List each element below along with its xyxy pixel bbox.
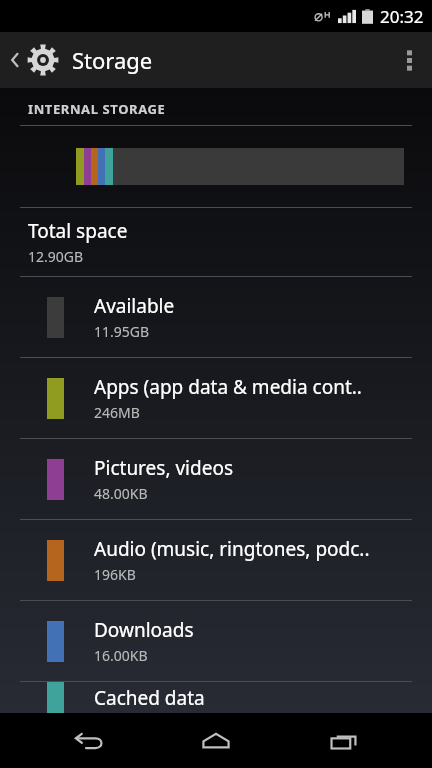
staticText: Downloads — [94, 617, 194, 643]
staticText: 11.95GB — [94, 322, 150, 341]
staticText: 48.00KB — [94, 484, 148, 503]
button[interactable]: Apps (app data & media cont.. — [0, 358, 432, 438]
staticText: 12.90GB — [28, 247, 84, 266]
staticText: Available — [94, 293, 175, 319]
button[interactable]: Pictures, videos — [0, 439, 432, 519]
button[interactable]: Recent apps — [305, 713, 383, 768]
button[interactable]: Total space — [0, 208, 432, 276]
staticText: 20:32 — [380, 5, 424, 28]
button[interactable]: Back — [50, 713, 128, 768]
staticText: Cached data — [94, 685, 205, 711]
staticText: Pictures, videos — [94, 455, 233, 481]
button[interactable]: Downloads — [0, 601, 432, 681]
staticText: 196KB — [94, 565, 136, 584]
staticText: Total space — [28, 218, 128, 244]
staticText: Apps (app data & media cont.. — [94, 374, 362, 400]
button[interactable]: Home — [177, 713, 255, 768]
staticText: Storage — [72, 45, 153, 75]
staticText: 246MB — [94, 403, 140, 422]
staticText: 16.00KB — [94, 646, 148, 665]
button[interactable]: Available — [0, 277, 432, 357]
staticText: INTERNAL STORAGE — [28, 100, 166, 118]
button[interactable]: More options — [386, 32, 432, 88]
button[interactable]: Audio (music, ringtones, podc.. — [0, 520, 432, 600]
button[interactable]: Back — [10, 43, 153, 77]
staticText: Audio (music, ringtones, podc.. — [94, 536, 370, 562]
button[interactable]: Cached data — [0, 682, 432, 713]
